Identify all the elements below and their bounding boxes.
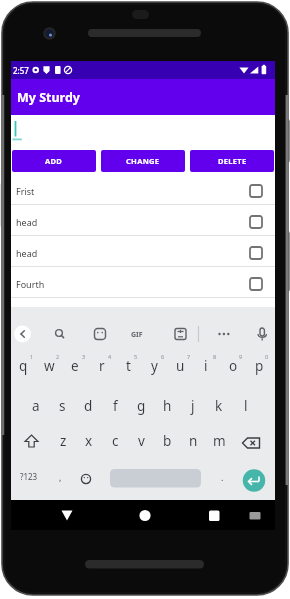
staticText: 0 — [265, 353, 269, 360]
staticText: g — [137, 397, 146, 415]
staticText: 2:57 — [13, 65, 29, 76]
button[interactable]: DELETE — [190, 150, 274, 172]
button[interactable] — [110, 469, 201, 488]
staticText: x — [85, 432, 93, 450]
button[interactable]: j — [184, 394, 202, 418]
button[interactable]: head — [11, 236, 275, 267]
staticText: u — [176, 357, 185, 375]
button[interactable]: o — [224, 354, 242, 378]
staticText: ?123 — [20, 471, 38, 482]
button[interactable]: n — [184, 429, 202, 453]
staticText: w — [44, 357, 55, 375]
button[interactable]: r — [93, 354, 111, 378]
button[interactable]: x — [80, 429, 98, 453]
button[interactable]: b — [158, 429, 176, 453]
button[interactable]: f — [106, 394, 124, 418]
staticText: o — [229, 357, 238, 375]
staticText: m — [213, 432, 226, 450]
button[interactable] — [133, 503, 157, 527]
button[interactable]: k — [210, 394, 228, 418]
staticText: n — [189, 432, 198, 450]
staticText: 6 — [161, 353, 165, 360]
staticText: My Sturdy — [17, 89, 80, 106]
button[interactable] — [243, 470, 265, 492]
staticText: 2 — [56, 353, 60, 360]
staticText: 1 — [30, 353, 34, 360]
staticText: c — [112, 432, 119, 450]
button[interactable]: y — [145, 354, 163, 378]
button[interactable]: h — [158, 394, 176, 418]
button[interactable]: s — [53, 394, 71, 418]
staticText: f — [113, 397, 118, 415]
staticText: GIF — [131, 330, 143, 340]
staticText: i — [204, 357, 208, 375]
button[interactable]: t — [119, 354, 137, 378]
staticText: ADD — [45, 156, 63, 166]
button[interactable]: Frist — [11, 174, 275, 205]
staticText: head — [16, 216, 38, 228]
button[interactable]: v — [132, 429, 150, 453]
staticText: , — [59, 471, 62, 483]
staticText: y — [151, 357, 158, 375]
button[interactable]: l — [237, 394, 255, 418]
button[interactable]: w — [40, 354, 58, 378]
button[interactable]: i — [197, 354, 215, 378]
staticText: 8 — [213, 353, 217, 360]
staticText: z — [60, 432, 67, 450]
button[interactable]: a — [27, 394, 45, 418]
staticText: Fourth — [16, 278, 45, 290]
button[interactable]: ADD — [12, 150, 96, 172]
staticText: head — [16, 247, 38, 259]
staticText: b — [163, 432, 172, 450]
staticText: h — [163, 397, 172, 415]
staticText: k — [215, 397, 223, 415]
staticText: 5 — [134, 353, 138, 360]
button[interactable]: m — [210, 429, 228, 453]
staticText: l — [244, 397, 248, 415]
staticText: 9 — [239, 353, 243, 360]
staticText: r — [99, 357, 105, 375]
button[interactable] — [11, 115, 275, 148]
button[interactable]: CHANGE — [101, 150, 185, 172]
button[interactable]: Fourth — [11, 267, 275, 298]
staticText: d — [84, 397, 93, 415]
button[interactable]: d — [79, 394, 97, 418]
staticText: DELETE — [218, 156, 247, 166]
button[interactable]: u — [171, 354, 189, 378]
button[interactable] — [202, 503, 226, 527]
staticText: 4 — [108, 353, 112, 360]
staticText: q — [19, 357, 28, 375]
staticText: s — [59, 397, 66, 415]
staticText: j — [191, 397, 195, 415]
staticText: 3 — [82, 353, 86, 360]
button[interactable] — [55, 503, 79, 527]
staticText: 7 — [187, 353, 191, 360]
staticText: CHANGE — [126, 156, 160, 166]
button[interactable]: g — [132, 394, 150, 418]
staticText: a — [32, 397, 40, 415]
button[interactable]: c — [106, 429, 124, 453]
button[interactable]: e — [66, 354, 84, 378]
staticText: e — [71, 357, 79, 375]
button[interactable]: head — [11, 205, 275, 236]
button[interactable]: q — [14, 354, 32, 378]
staticText: v — [138, 432, 145, 450]
staticText: t — [126, 357, 131, 375]
button[interactable]: z — [54, 429, 72, 453]
staticText: . — [221, 471, 224, 483]
staticText: p — [255, 357, 264, 375]
staticText: Frist — [16, 185, 35, 197]
button[interactable]: p — [250, 354, 268, 378]
